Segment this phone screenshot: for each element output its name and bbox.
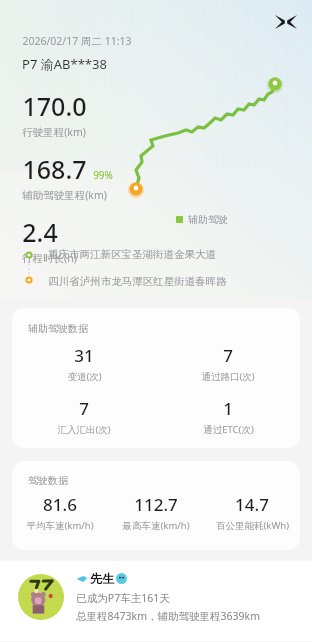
staticText: 2.4	[22, 215, 58, 249]
staticText: 31	[74, 344, 94, 367]
button[interactable]: 辅助驾驶数据	[12, 308, 300, 448]
staticText: 112.7	[134, 493, 178, 516]
staticText: 170.0	[22, 89, 87, 123]
button[interactable]: XPeng logo	[272, 8, 300, 36]
staticText: 行程时长(h)	[22, 251, 77, 265]
staticText: P7 渝AB***38	[22, 55, 107, 73]
staticText: 汇入汇出(次)	[57, 423, 111, 436]
staticText: 已成为P7车主161天	[76, 591, 170, 605]
staticText: 百公里能耗(kWh)	[216, 519, 289, 532]
button[interactable]: 7	[12, 397, 156, 436]
button[interactable]: 31	[12, 344, 156, 383]
button[interactable]: 7	[156, 344, 300, 383]
staticText: 7	[79, 397, 89, 420]
staticText: 2026/02/17 周二 11:13	[22, 34, 132, 48]
staticText: 168.7	[22, 152, 87, 186]
staticText: 重庆市两江新区宝圣湖街道金果大道	[48, 248, 216, 261]
staticText: 7	[223, 344, 233, 367]
staticText: 99%	[93, 168, 113, 182]
staticText: 总里程8473km，辅助驾驶里程3639km	[76, 609, 260, 623]
button[interactable]: 112.7	[108, 493, 204, 532]
staticText: 1	[223, 397, 233, 420]
button[interactable]: 14.7	[204, 493, 300, 532]
staticText: 14.7	[235, 493, 269, 516]
button[interactable]: 先生	[0, 561, 312, 641]
button[interactable]: 81.6	[12, 493, 108, 532]
staticText: 驾驶数据	[28, 474, 68, 487]
staticText: 四川省泸州市龙马潭区红星街道春晖路	[48, 275, 227, 288]
staticText: 辅助驾驶里程(km)	[22, 188, 107, 202]
staticText: 81.6	[43, 493, 77, 516]
staticText: 通过路口(次)	[201, 370, 255, 383]
staticText: 辅助驾驶	[188, 213, 228, 226]
staticText: 平均车速(km/h)	[26, 519, 94, 532]
staticText: 通过ETC(次)	[203, 423, 254, 436]
button[interactable]: 驾驶数据	[12, 461, 300, 550]
staticText: 辅助驾驶数据	[28, 322, 88, 335]
staticText: 变道(次)	[67, 370, 102, 383]
staticText: 行驶里程(km)	[22, 125, 86, 139]
button[interactable]: 1	[156, 397, 300, 436]
staticText: 先生	[90, 571, 114, 586]
staticText: 最高车速(km/h)	[122, 519, 190, 532]
